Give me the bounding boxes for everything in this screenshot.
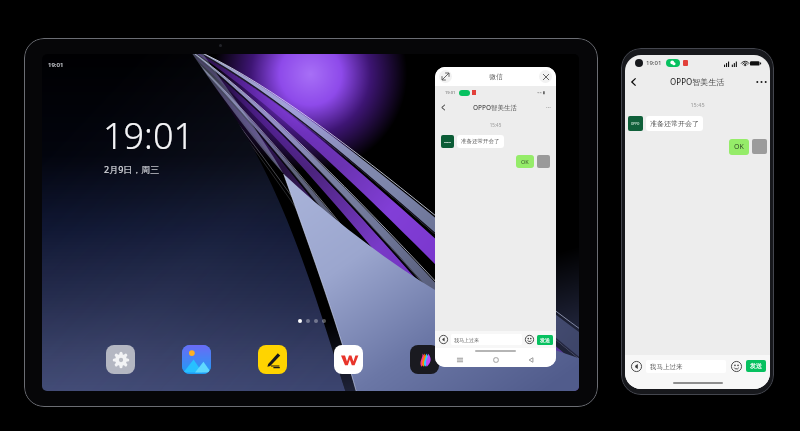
staticText: 我马上过来 [650, 363, 683, 371]
button[interactable]: More [752, 71, 770, 92]
staticText: OK [734, 142, 744, 152]
button[interactable]: Expand [439, 70, 452, 83]
button[interactable]: Back [625, 71, 643, 92]
staticText: 15:45 [625, 101, 770, 108]
button[interactable]: Voice message [629, 359, 643, 373]
button[interactable]: Emoji [524, 334, 535, 345]
staticText: ⌁⌁ ▮ [537, 90, 546, 95]
staticText: 准备还常开会了 [650, 119, 699, 128]
staticText: 2月9日，周三 [104, 163, 160, 175]
staticText: 15:45 [435, 122, 556, 128]
staticText: OPPO [444, 140, 451, 143]
staticText: 发送 [540, 337, 550, 343]
button[interactable]: Notes [258, 345, 287, 374]
button[interactable]: Home [492, 356, 500, 364]
staticText: 19:01 [445, 90, 456, 95]
button[interactable]: 发送 [746, 360, 766, 372]
button[interactable]: Creative [410, 345, 439, 374]
staticText: 发送 [750, 362, 762, 370]
button[interactable]: 我马上过来 [646, 360, 726, 373]
staticText: 19:01 [646, 59, 662, 67]
staticText: ··· [546, 103, 551, 111]
staticText: 19:01 [103, 111, 195, 160]
button[interactable]: Close [539, 70, 552, 83]
staticText: 准备还常开会了 [461, 138, 500, 145]
button[interactable]: 我马上过来 [451, 334, 522, 345]
staticText: 19:01 [48, 61, 64, 69]
button[interactable]: Recents [456, 356, 464, 364]
staticText: OK [521, 158, 529, 165]
button[interactable]: Emoji [729, 359, 743, 373]
button[interactable]: Voice message [438, 334, 449, 345]
staticText: OPPO [631, 122, 640, 126]
staticText: 我马上过来 [454, 337, 479, 343]
button[interactable]: Gallery [182, 345, 211, 374]
staticText: OPPO智美生活 [670, 76, 725, 87]
button[interactable]: Settings [106, 345, 135, 374]
button[interactable]: 发送 [537, 335, 553, 345]
staticText: OPPO智美生活 [473, 103, 518, 112]
staticText: 微信 [489, 72, 503, 81]
button[interactable]: Back [527, 356, 535, 364]
button[interactable]: WPS Office [334, 345, 363, 374]
